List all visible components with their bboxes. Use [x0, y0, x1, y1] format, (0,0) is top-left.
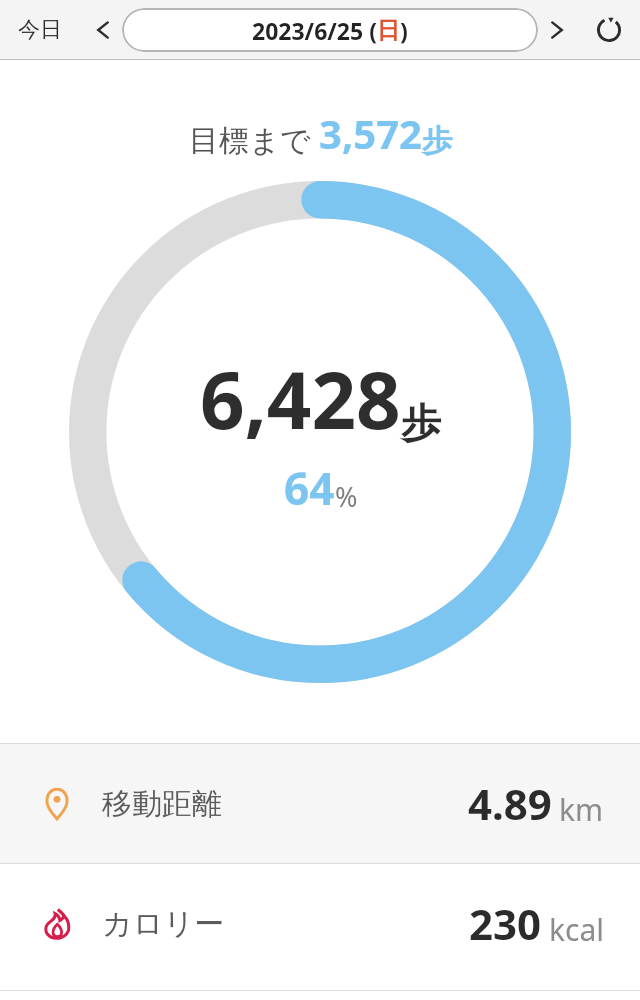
button[interactable]: Next day [540, 13, 574, 47]
staticText: 3,572 [319, 106, 422, 160]
staticText: 今日 [18, 16, 62, 44]
staticText: km [559, 789, 604, 830]
button[interactable]: 今日 [14, 10, 66, 50]
button[interactable]: Previous day [86, 13, 120, 47]
staticText: 歩 [422, 122, 452, 160]
staticText: カロリー [102, 905, 225, 943]
staticText: 230 [469, 895, 542, 952]
staticText: ) [400, 15, 408, 46]
button[interactable]: カロリー [0, 864, 640, 983]
staticText: 目標まで [189, 122, 311, 160]
button[interactable]: 移動距離 [0, 744, 640, 863]
staticText: 日 [377, 16, 400, 45]
button[interactable]: 2023/6/25 ( [122, 8, 538, 52]
staticText: kcal [549, 909, 604, 950]
staticText: 2023/6/25 ( [252, 15, 377, 46]
staticText: 6,428 [200, 346, 401, 452]
staticText: 歩 [401, 398, 441, 448]
staticText: 64 [284, 458, 335, 518]
staticText: % [335, 478, 358, 515]
staticText: 移動距離 [102, 785, 222, 823]
staticText: 4.89 [468, 775, 552, 832]
button[interactable]: Refresh [588, 9, 630, 51]
